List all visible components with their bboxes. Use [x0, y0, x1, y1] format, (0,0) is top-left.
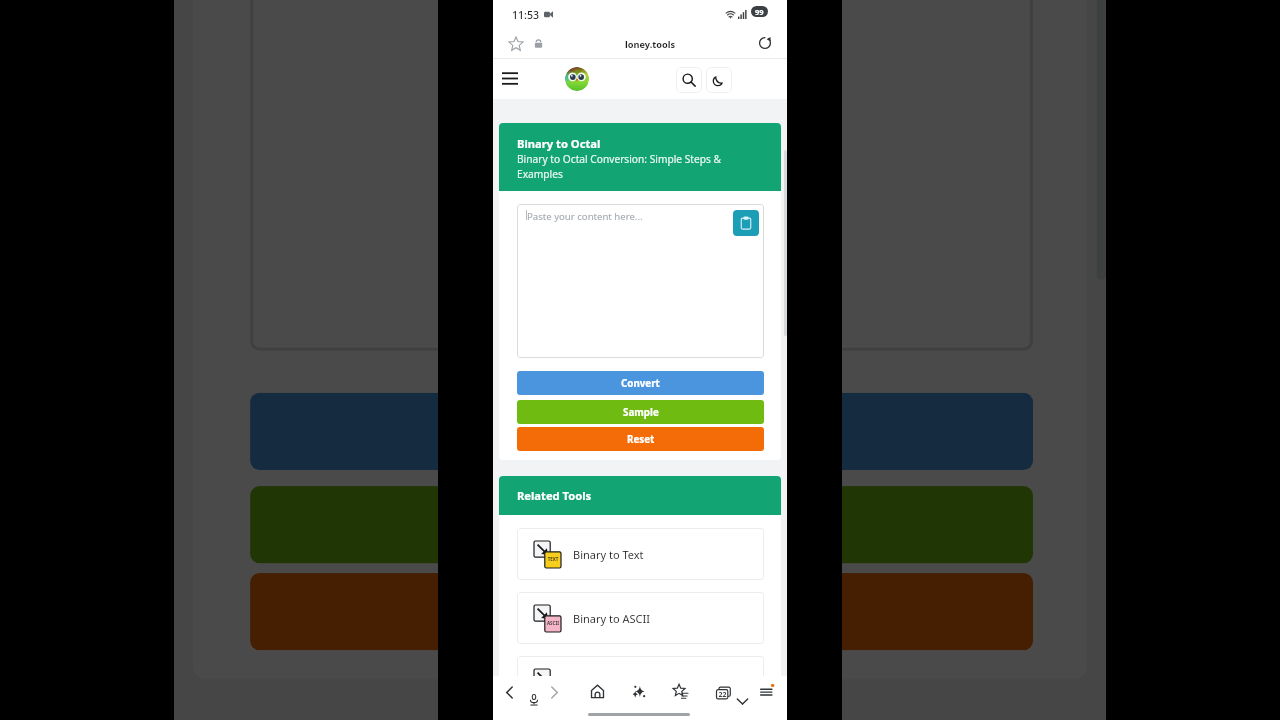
- button[interactable]: Convert: [517, 371, 764, 395]
- button[interactable]: Reset: [517, 427, 764, 451]
- staticText: Binary to Text: [573, 547, 644, 562]
- staticText: Binary to Hex: [573, 675, 643, 690]
- button[interactable]: loney.tools home: [565, 67, 589, 91]
- staticText: Binary to Octal: [517, 136, 601, 151]
- button[interactable]: Open menu: [502, 72, 518, 85]
- button[interactable]: Assistant: [633, 685, 646, 698]
- button[interactable]: Back: [501, 684, 518, 701]
- staticText: Convert: [580, 412, 703, 454]
- staticText: Reset: [627, 433, 655, 446]
- button[interactable]: Bookmarks: [674, 685, 688, 698]
- staticText: loney.tools: [625, 38, 676, 51]
- button[interactable]: Collapse toolbar: [736, 697, 749, 706]
- staticText: 22: [717, 690, 728, 700]
- button[interactable]: Home: [591, 685, 604, 698]
- staticText: Paste your content here...: [527, 210, 643, 223]
- button[interactable]: Forward: [546, 684, 563, 701]
- button[interactable]: Reset: [250, 573, 1033, 650]
- staticText: 11:53: [512, 8, 540, 22]
- staticText: Binary to Octal Conversion: Simple Steps…: [517, 152, 739, 181]
- button[interactable]: Reload: [757, 35, 773, 51]
- staticText: TEXT: [545, 556, 561, 562]
- button[interactable]: ASCII: [517, 592, 764, 644]
- button[interactable]: Voice search: [528, 694, 540, 706]
- button[interactable]: HEX: [517, 656, 764, 708]
- button[interactable]: Paste your content here...: [250, 0, 1033, 351]
- button[interactable]: Sample: [250, 486, 1033, 563]
- staticText: Sample: [623, 406, 659, 419]
- button[interactable]: Secure connection: [532, 37, 545, 50]
- button[interactable]: Sample: [517, 400, 764, 424]
- button[interactable]: Search: [676, 67, 702, 93]
- button[interactable]: Paste from clipboard: [733, 210, 759, 236]
- staticText: Convert: [621, 377, 660, 390]
- staticText: ASCII: [545, 620, 561, 626]
- button[interactable]: TEXT: [517, 528, 764, 580]
- staticText: Sample: [586, 505, 700, 547]
- staticText: 99: [755, 7, 764, 17]
- button[interactable]: Toggle dark mode: [706, 67, 732, 93]
- staticText: HEX: [545, 684, 561, 690]
- button[interactable]: More options: [760, 684, 774, 698]
- button[interactable]: Paste your content here...: [517, 204, 764, 358]
- staticText: Reset: [599, 592, 688, 634]
- button[interactable]: Convert: [250, 393, 1033, 470]
- staticText: Binary to ASCII: [573, 611, 650, 626]
- staticText: Related Tools: [517, 488, 592, 503]
- button[interactable]: Bookmark: [508, 36, 524, 52]
- button[interactable]: Tabs: [716, 687, 731, 699]
